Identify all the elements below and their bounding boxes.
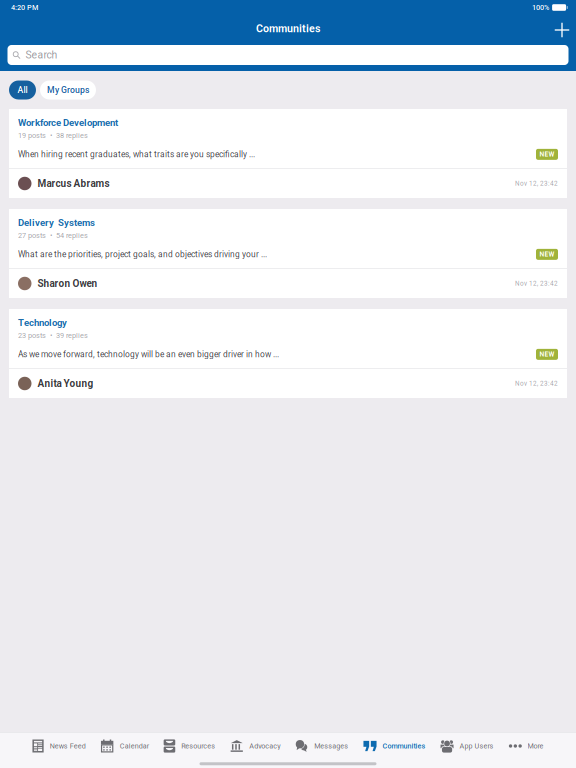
staticText: 27 posts • 54 replies (18, 231, 88, 240)
button[interactable]: Search (7, 45, 568, 65)
staticText: Delivery Systems (18, 217, 95, 228)
staticText: Nov 12, 23:42 (515, 180, 558, 187)
staticText: All (17, 85, 27, 95)
staticText: Messages (314, 742, 348, 750)
button[interactable]: New community (548, 17, 576, 43)
staticText: 100% (532, 3, 549, 12)
staticText: NEW (539, 150, 554, 158)
staticText: 23 posts • 39 replies (18, 331, 88, 340)
staticText: Nov 12, 23:42 (515, 380, 558, 387)
staticText: Communities (382, 742, 425, 750)
staticText: Workforce Development (18, 117, 118, 128)
staticText: Nov 12, 23:42 (515, 280, 558, 287)
staticText: Technology (18, 317, 67, 328)
button[interactable]: All (9, 80, 36, 99)
staticText: App Users (459, 742, 493, 750)
staticText: Sharon Owen (37, 278, 97, 289)
button[interactable]: News Feed (32, 732, 86, 759)
staticText: Calendar (120, 742, 149, 750)
button[interactable]: Messages (295, 732, 348, 759)
staticText: NEW (539, 250, 554, 258)
staticText: Search (25, 49, 57, 61)
button[interactable]: Delivery Systems (9, 209, 567, 298)
staticText: When hiring recent graduates, what trait… (18, 149, 255, 159)
button[interactable]: Calendar (101, 732, 149, 759)
staticText: My Groups (47, 85, 89, 95)
staticText: Anita Young (37, 378, 93, 389)
staticText: What are the priorities, project goals, … (18, 249, 267, 259)
staticText: Resources (181, 742, 215, 750)
button[interactable]: Workforce Development (9, 109, 567, 198)
staticText: Communities (256, 22, 320, 35)
staticText: News Feed (50, 742, 86, 750)
button[interactable]: Advocacy (230, 732, 280, 759)
button[interactable]: Resources (164, 732, 215, 759)
staticText: Advocacy (249, 742, 280, 750)
button[interactable]: More (508, 732, 543, 759)
button[interactable]: Technology (9, 309, 567, 398)
staticText: Marcus Abrams (37, 178, 109, 189)
button[interactable]: App Users (440, 732, 493, 759)
staticText: 4:20 PM (11, 3, 38, 12)
staticText: 19 posts • 38 replies (18, 131, 88, 140)
staticText: As we move forward, technology will be a… (18, 349, 279, 359)
button[interactable]: Communities (363, 732, 425, 759)
staticText: NEW (539, 350, 554, 358)
staticText: More (527, 742, 543, 750)
button[interactable]: My Groups (40, 80, 96, 99)
